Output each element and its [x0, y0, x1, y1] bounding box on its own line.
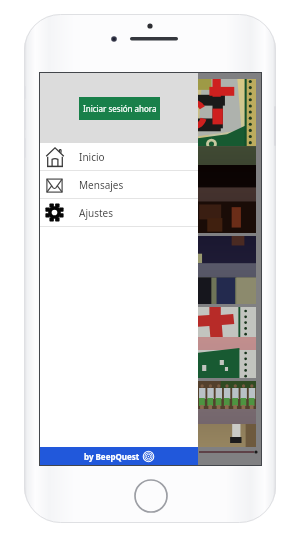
- other: BeepQuest logo: [143, 451, 154, 462]
- staticText: Iniciar sesión ahora: [83, 103, 157, 114]
- staticText: Inicio: [79, 150, 105, 164]
- button[interactable]: [198, 381, 256, 447]
- button[interactable]: Iniciar sesión ahora: [79, 97, 160, 120]
- staticText: Ajustes: [79, 206, 113, 220]
- button[interactable]: Inicio: [40, 143, 198, 171]
- button[interactable]: [198, 79, 256, 165]
- button[interactable]: [198, 236, 256, 304]
- button[interactable]: [198, 307, 256, 378]
- button[interactable]: Ajustes: [40, 199, 198, 227]
- button[interactable]: by BeepQuest: [40, 447, 198, 465]
- staticText: Mensajes: [79, 178, 124, 192]
- button[interactable]: [198, 165, 256, 233]
- staticText: by BeepQuest: [84, 451, 140, 462]
- button[interactable]: Mensajes: [40, 171, 198, 199]
